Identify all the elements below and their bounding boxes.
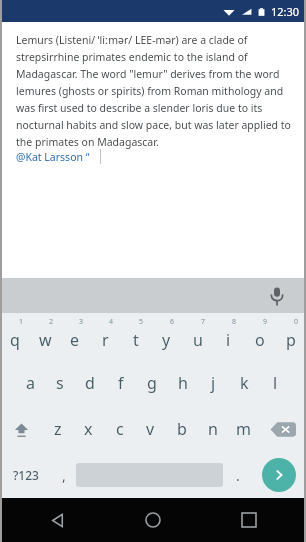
staticText: m (236, 418, 251, 440)
button[interactable]: 0 (275, 313, 306, 360)
button[interactable]: c (104, 406, 135, 452)
staticText: 7 (201, 317, 206, 327)
button[interactable]: Voice input (264, 283, 290, 309)
staticText: 2 (49, 317, 54, 327)
staticText: Lemurs (Listeni/ ˈliːmər/ LEE-mər) are a… (16, 33, 292, 149)
staticText: w (39, 329, 52, 351)
button[interactable]: . (223, 452, 252, 498)
button[interactable]: 7 (182, 313, 213, 360)
button[interactable]: s (45, 360, 75, 406)
button[interactable]: h (167, 360, 198, 406)
button[interactable]: v (135, 406, 166, 452)
staticText: e (70, 329, 80, 351)
staticText: 0 (294, 317, 299, 327)
staticText: n (208, 418, 218, 440)
staticText: q (10, 329, 20, 351)
button[interactable]: Back (40, 503, 74, 537)
staticText: o (255, 329, 265, 351)
button[interactable]: d (75, 360, 105, 406)
button[interactable]: 2 (30, 313, 60, 360)
staticText: 8 (232, 317, 237, 327)
staticText: v (146, 418, 155, 440)
staticText: 12:30 (271, 4, 300, 19)
staticText: c (116, 418, 124, 440)
button[interactable]: 6 (151, 313, 182, 360)
staticText: l (273, 372, 278, 394)
staticText: r (102, 329, 109, 351)
button[interactable]: Home (136, 503, 170, 537)
button[interactable]: 1 (0, 313, 30, 360)
staticText: 5 (139, 317, 144, 327)
button[interactable]: k (229, 360, 260, 406)
staticText: p (286, 329, 296, 351)
staticText: t (133, 329, 139, 351)
button[interactable]: , (51, 452, 76, 498)
button[interactable]: l (260, 360, 291, 406)
button[interactable]: x (73, 406, 104, 452)
button[interactable]: Backspace (259, 406, 306, 452)
button[interactable]: f (105, 360, 136, 406)
button[interactable]: 5 (120, 313, 151, 360)
staticText: b (177, 418, 187, 440)
button[interactable]: j (198, 360, 229, 406)
staticText: , (62, 466, 66, 485)
button[interactable]: z (42, 406, 73, 452)
staticText: s (56, 372, 64, 394)
button[interactable]: a (15, 360, 45, 406)
button[interactable]: ?123 (0, 452, 51, 498)
button[interactable]: n (197, 406, 228, 452)
button[interactable]: 9 (244, 313, 275, 360)
staticText: 6 (170, 317, 175, 327)
button[interactable]: 4 (90, 313, 120, 360)
staticText: . (236, 466, 240, 485)
staticText: ?123 (13, 467, 39, 483)
staticText: x (84, 418, 93, 440)
button[interactable]: g (136, 360, 167, 406)
button[interactable]: b (166, 406, 197, 452)
staticText: g (147, 372, 157, 394)
staticText: z (54, 418, 62, 440)
staticText: i (226, 329, 231, 351)
staticText: @Kat Larsson ˮ (16, 150, 90, 164)
staticText: u (193, 329, 203, 351)
staticText: 1 (19, 317, 24, 327)
staticText: d (85, 372, 95, 394)
staticText: k (240, 372, 249, 394)
button[interactable]: 8 (213, 313, 244, 360)
staticText: f (118, 372, 124, 394)
staticText: 3 (79, 317, 84, 327)
button[interactable]: m (228, 406, 259, 452)
staticText: y (162, 329, 171, 351)
button[interactable]: Recents (232, 503, 266, 537)
staticText: h (178, 372, 188, 394)
staticText: a (26, 372, 35, 394)
button[interactable]: 3 (60, 313, 90, 360)
staticText: 9 (263, 317, 268, 327)
staticText: j (211, 372, 216, 394)
staticText: 4 (109, 317, 114, 327)
button[interactable]: Send (262, 458, 296, 492)
button[interactable]: Shift (0, 406, 42, 452)
